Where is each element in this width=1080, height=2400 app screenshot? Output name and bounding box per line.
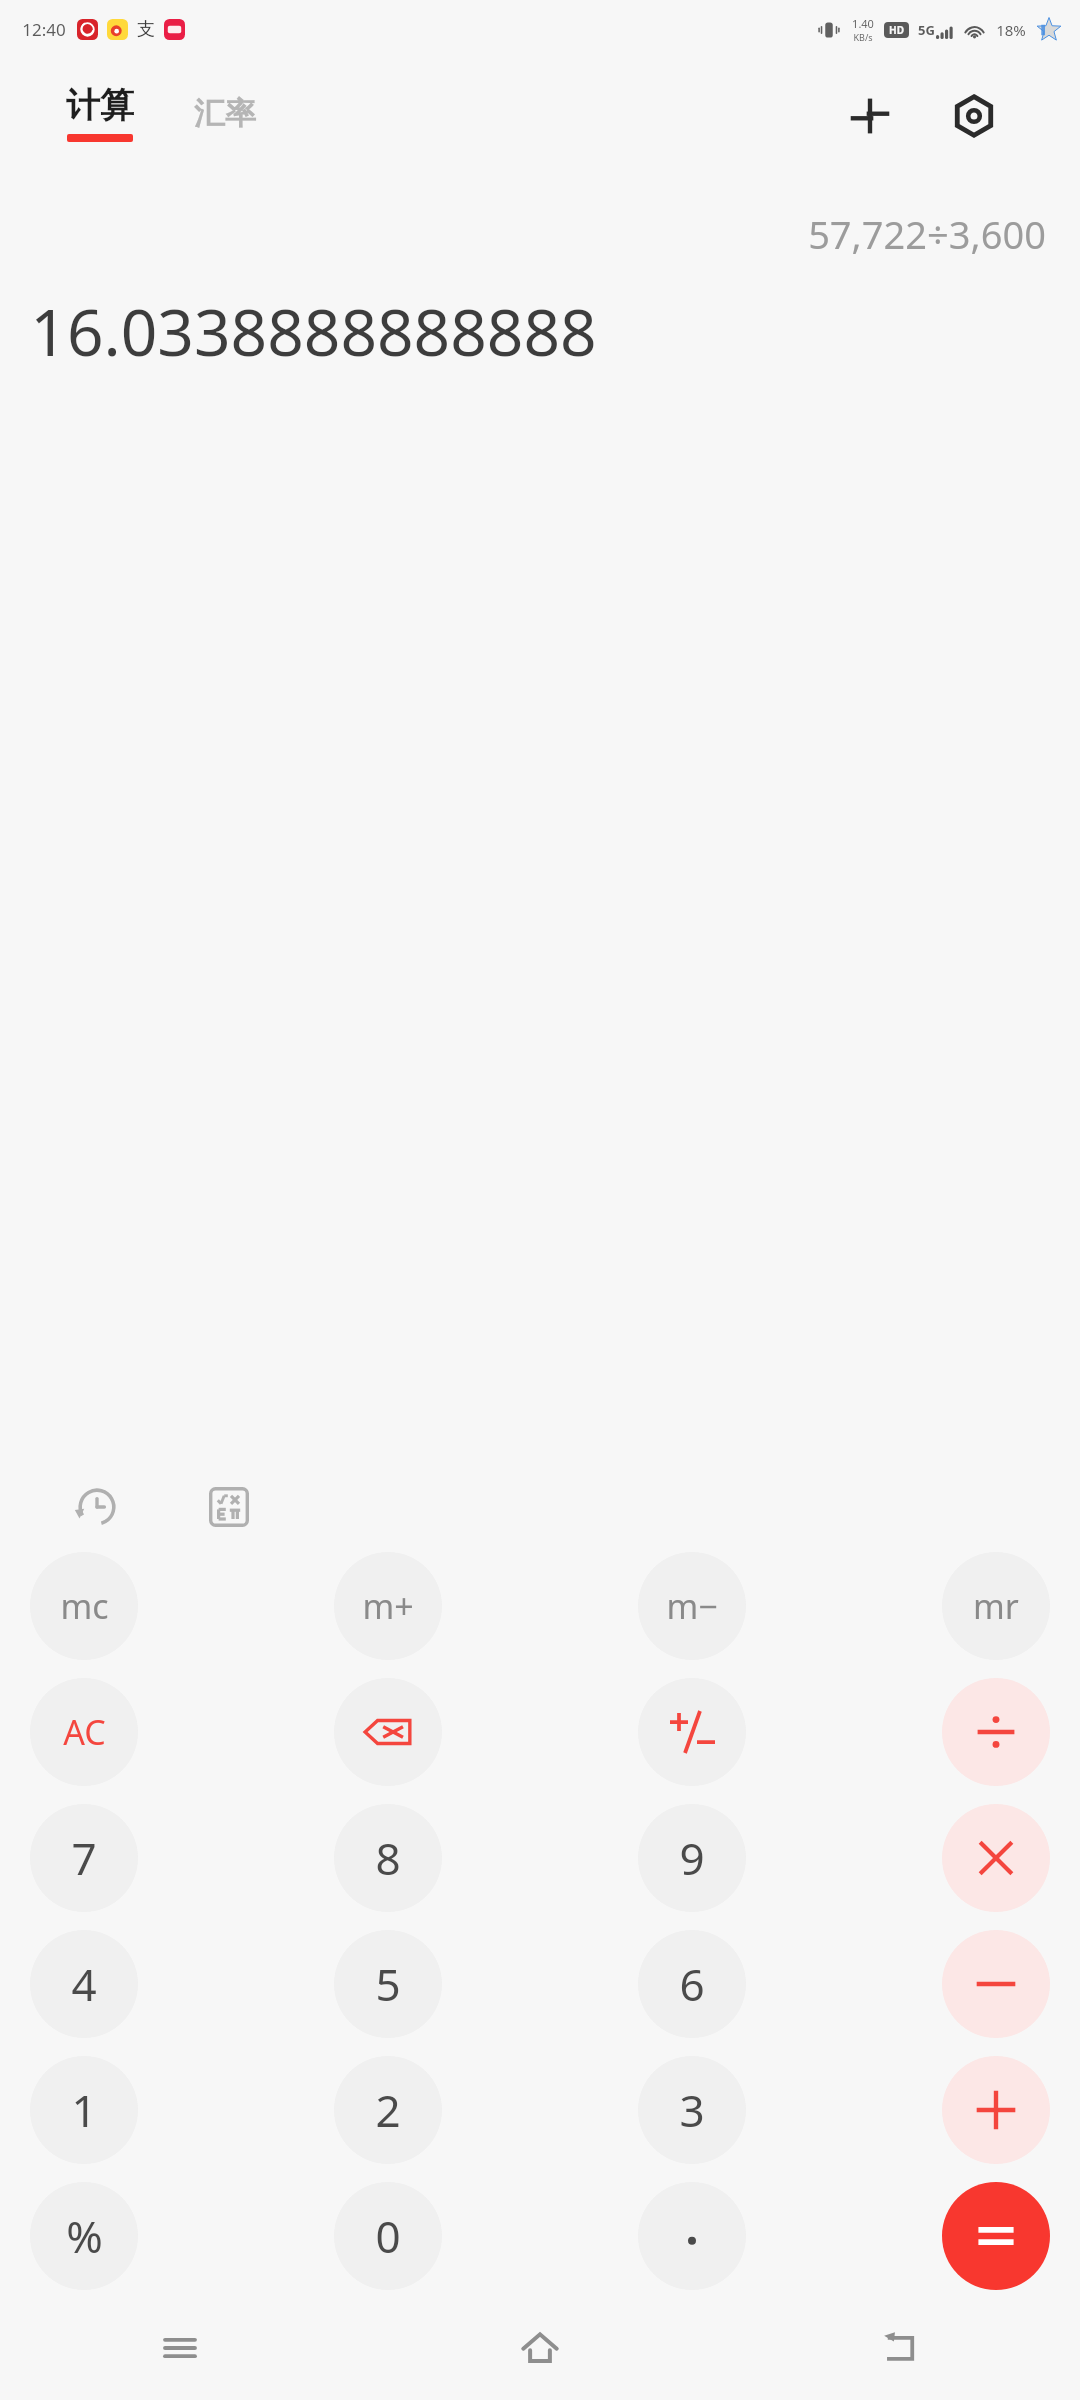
staticText: mc bbox=[60, 1583, 109, 1629]
button[interactable]: 0 bbox=[334, 2182, 442, 2290]
button[interactable]: Home bbox=[360, 2308, 720, 2388]
staticText: 汇率 bbox=[194, 94, 256, 133]
staticText: AC bbox=[63, 1709, 106, 1755]
button[interactable] bbox=[942, 1804, 1050, 1912]
staticText: 16.0338888888888 bbox=[30, 288, 597, 375]
button[interactable]: 3 bbox=[638, 2056, 746, 2164]
button[interactable] bbox=[638, 1678, 746, 1786]
staticText: 5 bbox=[375, 1954, 401, 2014]
button[interactable] bbox=[942, 2056, 1050, 2164]
button[interactable]: mc bbox=[30, 1552, 138, 1660]
button[interactable]: 1 bbox=[30, 2056, 138, 2164]
staticText: 计算 bbox=[66, 84, 134, 127]
button[interactable]: Recent apps bbox=[0, 2308, 360, 2388]
button[interactable]: 9 bbox=[638, 1804, 746, 1912]
button[interactable] bbox=[638, 2182, 746, 2290]
button[interactable]: Scientific bbox=[198, 1476, 260, 1538]
button[interactable]: 8 bbox=[334, 1804, 442, 1912]
staticText: 8 bbox=[375, 1828, 401, 1888]
staticText: 0 bbox=[375, 2206, 401, 2266]
staticText: 1.40 bbox=[852, 16, 874, 31]
staticText: % bbox=[66, 2206, 103, 2266]
staticText: 6 bbox=[679, 1954, 705, 2014]
staticText: HD bbox=[889, 23, 904, 37]
button[interactable]: Settings bbox=[942, 84, 1006, 148]
button[interactable]: % bbox=[30, 2182, 138, 2290]
staticText: 2 bbox=[375, 2080, 401, 2140]
staticText: 9 bbox=[679, 1828, 705, 1888]
staticText: 5G bbox=[918, 21, 935, 39]
staticText: 7 bbox=[71, 1828, 97, 1888]
staticText: mr bbox=[973, 1583, 1019, 1629]
staticText: 57,722÷3,600 bbox=[808, 208, 1046, 260]
button[interactable]: 2 bbox=[334, 2056, 442, 2164]
button[interactable]: Back bbox=[720, 2308, 1080, 2388]
staticText: 18% bbox=[996, 20, 1026, 40]
button[interactable] bbox=[942, 1678, 1050, 1786]
button[interactable]: 4 bbox=[30, 1930, 138, 2038]
staticText: 1 bbox=[71, 2080, 97, 2140]
button[interactable]: m+ bbox=[334, 1552, 442, 1660]
button[interactable]: 计算 bbox=[62, 84, 138, 142]
staticText: 4 bbox=[71, 1954, 97, 2014]
staticText: 支 bbox=[137, 18, 155, 41]
button[interactable] bbox=[334, 1678, 442, 1786]
button[interactable]: Collapse bbox=[838, 84, 902, 148]
staticText: m− bbox=[666, 1583, 718, 1629]
button[interactable]: 6 bbox=[638, 1930, 746, 2038]
button[interactable]: 7 bbox=[30, 1804, 138, 1912]
button[interactable]: AC bbox=[30, 1678, 138, 1786]
staticText: KB/s bbox=[853, 31, 873, 43]
button[interactable]: 5 bbox=[334, 1930, 442, 2038]
staticText: m+ bbox=[362, 1583, 414, 1629]
button[interactable] bbox=[942, 1930, 1050, 2038]
button[interactable]: m− bbox=[638, 1552, 746, 1660]
staticText: 3 bbox=[679, 2080, 705, 2140]
button[interactable]: 汇率 bbox=[190, 90, 260, 137]
button[interactable] bbox=[942, 2182, 1050, 2290]
staticText: 12:40 bbox=[22, 18, 66, 41]
button[interactable]: mr bbox=[942, 1552, 1050, 1660]
button[interactable]: History bbox=[66, 1476, 128, 1538]
